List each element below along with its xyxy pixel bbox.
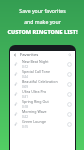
other: More options [67,122,72,127]
staticText: 0:12 [22,65,28,69]
staticText: 0:18 [22,105,28,109]
button[interactable]: Special Call Tone [10,69,75,79]
staticText: Ultra Ultra Pro [22,89,47,94]
button[interactable]: Green Lounge [10,119,75,129]
button[interactable]: Back [10,51,75,59]
other: More options [67,82,72,87]
other: Search [68,53,72,57]
staticText: Spring Ring Out [22,99,49,104]
staticText: 0:31 [22,95,28,99]
staticText: Save your favorites [19,7,66,14]
staticText: 0:22 [22,115,28,119]
button[interactable]: Ultra Ultra Pro [10,89,75,99]
staticText: Beautiful Celebration [22,79,58,84]
staticText: New Beat Night [22,59,49,64]
staticText: 0:15 [22,125,28,129]
other: More options [67,92,72,97]
staticText: 0:09 [22,85,28,89]
button[interactable]: Beautiful Celebration [10,79,75,89]
staticText: Green Lounge [22,119,46,124]
button[interactable]: New Beat Night [10,59,75,69]
staticText: Favorites [20,52,39,58]
other: Back [13,53,17,57]
staticText: and make your [24,18,61,25]
other: More options [67,72,72,77]
other: More options [67,62,72,67]
staticText: Special Call Tone [22,69,50,74]
button[interactable]: Morning Wave [10,109,75,119]
other: More options [67,112,72,117]
staticText: Morning Wave [22,109,47,114]
other: More options [67,102,72,107]
button[interactable]: Spring Ring Out [10,99,75,109]
staticText: 0:24 [22,75,28,79]
staticText: CUSTOM RINGTONE LIST! [7,28,78,35]
